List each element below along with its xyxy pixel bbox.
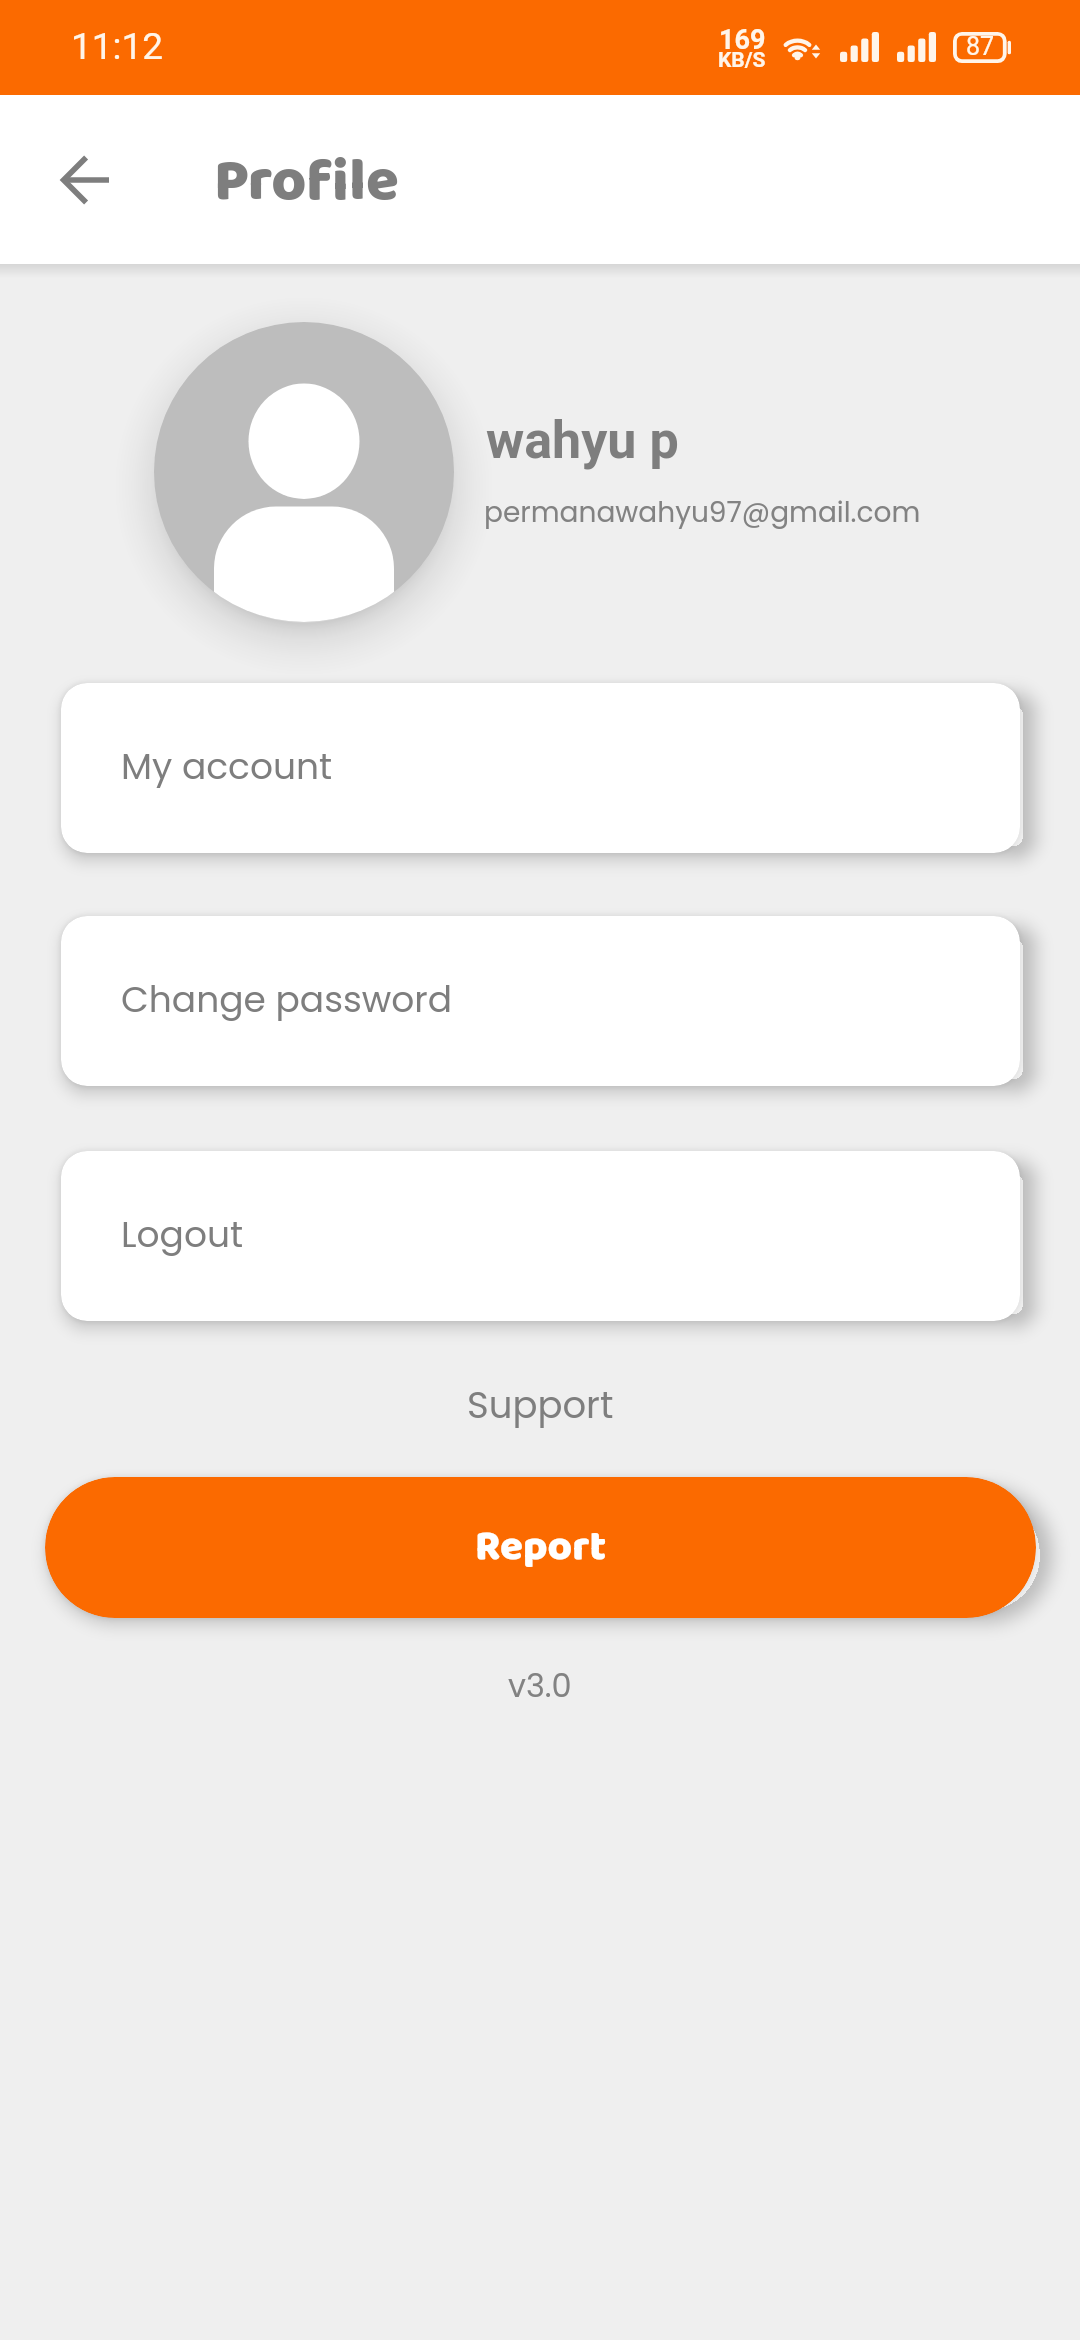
staticText: Support (467, 1379, 614, 1431)
staticText: 169 (719, 24, 766, 56)
staticText: 87 (966, 32, 995, 61)
staticText: Logout (121, 1209, 244, 1259)
staticText: wahyu p (486, 410, 679, 471)
staticText: KB/S (718, 48, 766, 73)
staticText: Report (475, 1514, 607, 1581)
staticText: 11:12 (71, 25, 164, 68)
button[interactable]: Report (45, 1477, 1036, 1618)
button[interactable]: My account (61, 683, 1020, 853)
staticText: Profile (214, 134, 399, 230)
button[interactable]: Back (37, 132, 133, 228)
staticText: v3.0 (508, 1663, 572, 1708)
button[interactable]: Change password (61, 916, 1020, 1086)
button[interactable]: Logout (61, 1151, 1020, 1321)
staticText: permanawahyu97@gmail.com (484, 493, 921, 532)
staticText: My account (121, 741, 333, 791)
staticText: Change password (121, 974, 453, 1024)
